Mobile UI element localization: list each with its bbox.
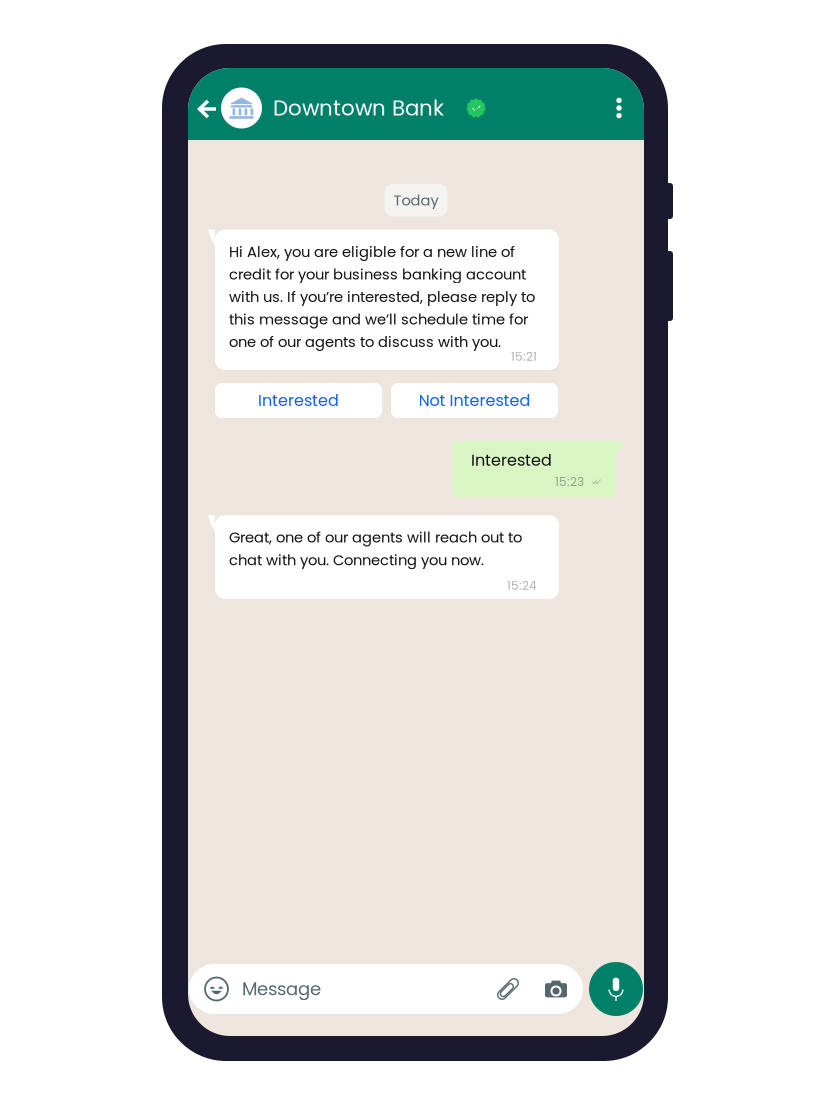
staticText: 15:21	[511, 348, 537, 365]
staticText: 15:23	[555, 473, 584, 490]
staticText: Hi Alex, you are eligible for a new line…	[229, 241, 535, 352]
staticText: Not Interested	[418, 389, 530, 412]
button[interactable]: Message	[189, 964, 583, 1014]
button[interactable]: More options	[602, 85, 636, 131]
staticText: Interested	[471, 449, 552, 471]
staticText: 15:24	[507, 577, 537, 594]
button[interactable]: Back	[188, 86, 221, 130]
button[interactable]: Record voice message	[589, 962, 643, 1016]
button[interactable]: Interested	[215, 383, 382, 418]
staticText: Message	[242, 976, 321, 1002]
staticText: Downtown Bank	[273, 93, 444, 123]
staticText: Interested	[258, 389, 339, 412]
staticText: Great, one of our agents will reach out …	[229, 527, 522, 570]
button[interactable]: Not Interested	[391, 383, 558, 418]
staticText: Today	[393, 190, 438, 210]
